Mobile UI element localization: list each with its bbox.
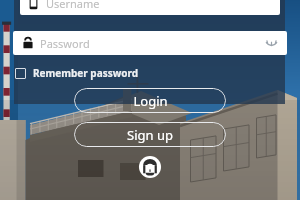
button[interactable]: Password	[13, 31, 287, 55]
button[interactable]: Sign up	[74, 122, 226, 147]
button[interactable]: Show password	[261, 33, 281, 53]
button[interactable]: Username	[20, 0, 280, 15]
staticText: Login	[133, 92, 168, 110]
button[interactable]: Account	[137, 154, 163, 180]
staticText: Sign up	[127, 126, 173, 144]
staticText: Remember password	[33, 66, 139, 80]
staticText: Username	[46, 0, 100, 11]
button[interactable]: Remember password	[13, 64, 141, 82]
staticText: Password	[40, 36, 90, 51]
button[interactable]: Login	[74, 88, 226, 113]
